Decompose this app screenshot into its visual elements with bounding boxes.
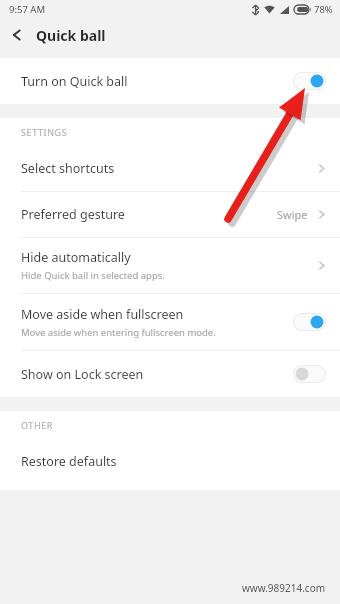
button[interactable]: Restore defaults — [0, 439, 340, 484]
button[interactable]: Turn on Quick ball — [0, 58, 340, 104]
staticText: Select shortcuts — [21, 160, 115, 177]
staticText: Quick ball — [36, 26, 106, 45]
staticText: OTHER — [21, 419, 54, 431]
staticText: 9:57 AM — [9, 3, 46, 16]
button[interactable]: Show on Lock screen — [0, 351, 340, 397]
staticText: Swipe — [277, 207, 308, 222]
button[interactable]: Preferred gesture — [0, 192, 340, 237]
staticText: Move aside when entering fullscreen mode… — [21, 326, 216, 339]
button[interactable]: Switch on — [293, 313, 326, 331]
button[interactable]: Select shortcuts — [0, 146, 340, 191]
button[interactable]: Hide automatically — [0, 238, 340, 293]
staticText: Move aside when fullscreen — [21, 306, 184, 323]
staticText: Show on Lock screen — [21, 366, 144, 383]
button[interactable]: Move aside when fullscreen — [0, 294, 340, 350]
staticText: Hide Quick ball in selected apps. — [21, 269, 165, 282]
staticText: Preferred gesture — [21, 206, 125, 223]
button[interactable]: Back — [0, 18, 34, 52]
staticText: www.989214.com — [242, 581, 326, 595]
button[interactable]: Switch on — [293, 72, 326, 90]
staticText: SETTINGS — [21, 126, 68, 138]
button[interactable]: Switch off — [293, 365, 326, 383]
staticText: Restore defaults — [21, 453, 117, 470]
staticText: 78% — [314, 3, 333, 16]
staticText: Turn on Quick ball — [21, 73, 128, 90]
staticText: Hide automatically — [21, 249, 131, 266]
